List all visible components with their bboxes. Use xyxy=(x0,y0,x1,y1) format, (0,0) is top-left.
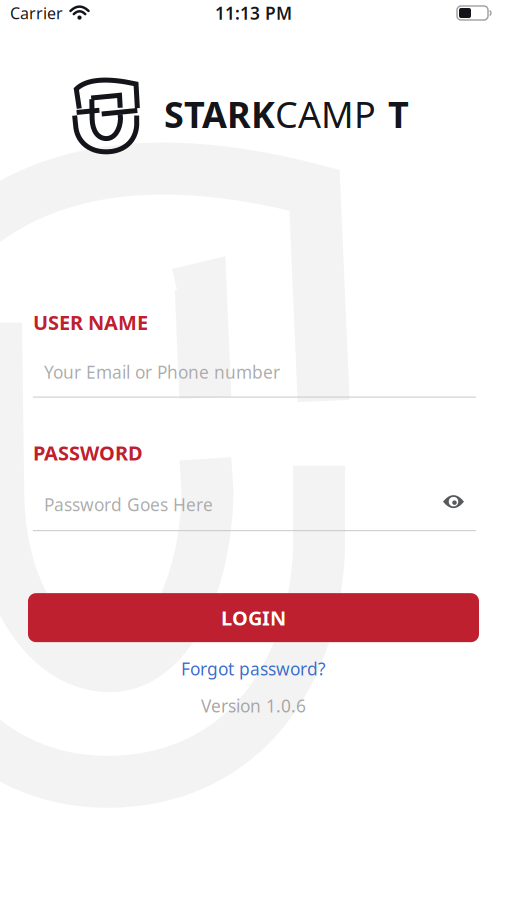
staticText: Your Email or Phone number xyxy=(44,361,280,384)
staticText: 11:13 PM xyxy=(215,1,292,24)
staticText: USER NAME xyxy=(33,309,148,336)
staticText: PASSWORD xyxy=(33,440,143,466)
staticText: Forgot password? xyxy=(181,657,326,680)
button[interactable]: Forgot password? xyxy=(181,657,326,680)
staticText: T xyxy=(388,90,409,138)
staticText: CAMP xyxy=(275,90,376,138)
staticText: Password Goes Here xyxy=(44,493,213,516)
button[interactable]: LOGIN xyxy=(28,593,479,642)
staticText: LOGIN xyxy=(221,604,286,631)
staticText: STARK xyxy=(164,90,275,138)
staticText: Carrier xyxy=(10,2,63,24)
staticText: Version 1.0.6 xyxy=(201,694,306,717)
button[interactable]: Show password xyxy=(443,497,465,512)
